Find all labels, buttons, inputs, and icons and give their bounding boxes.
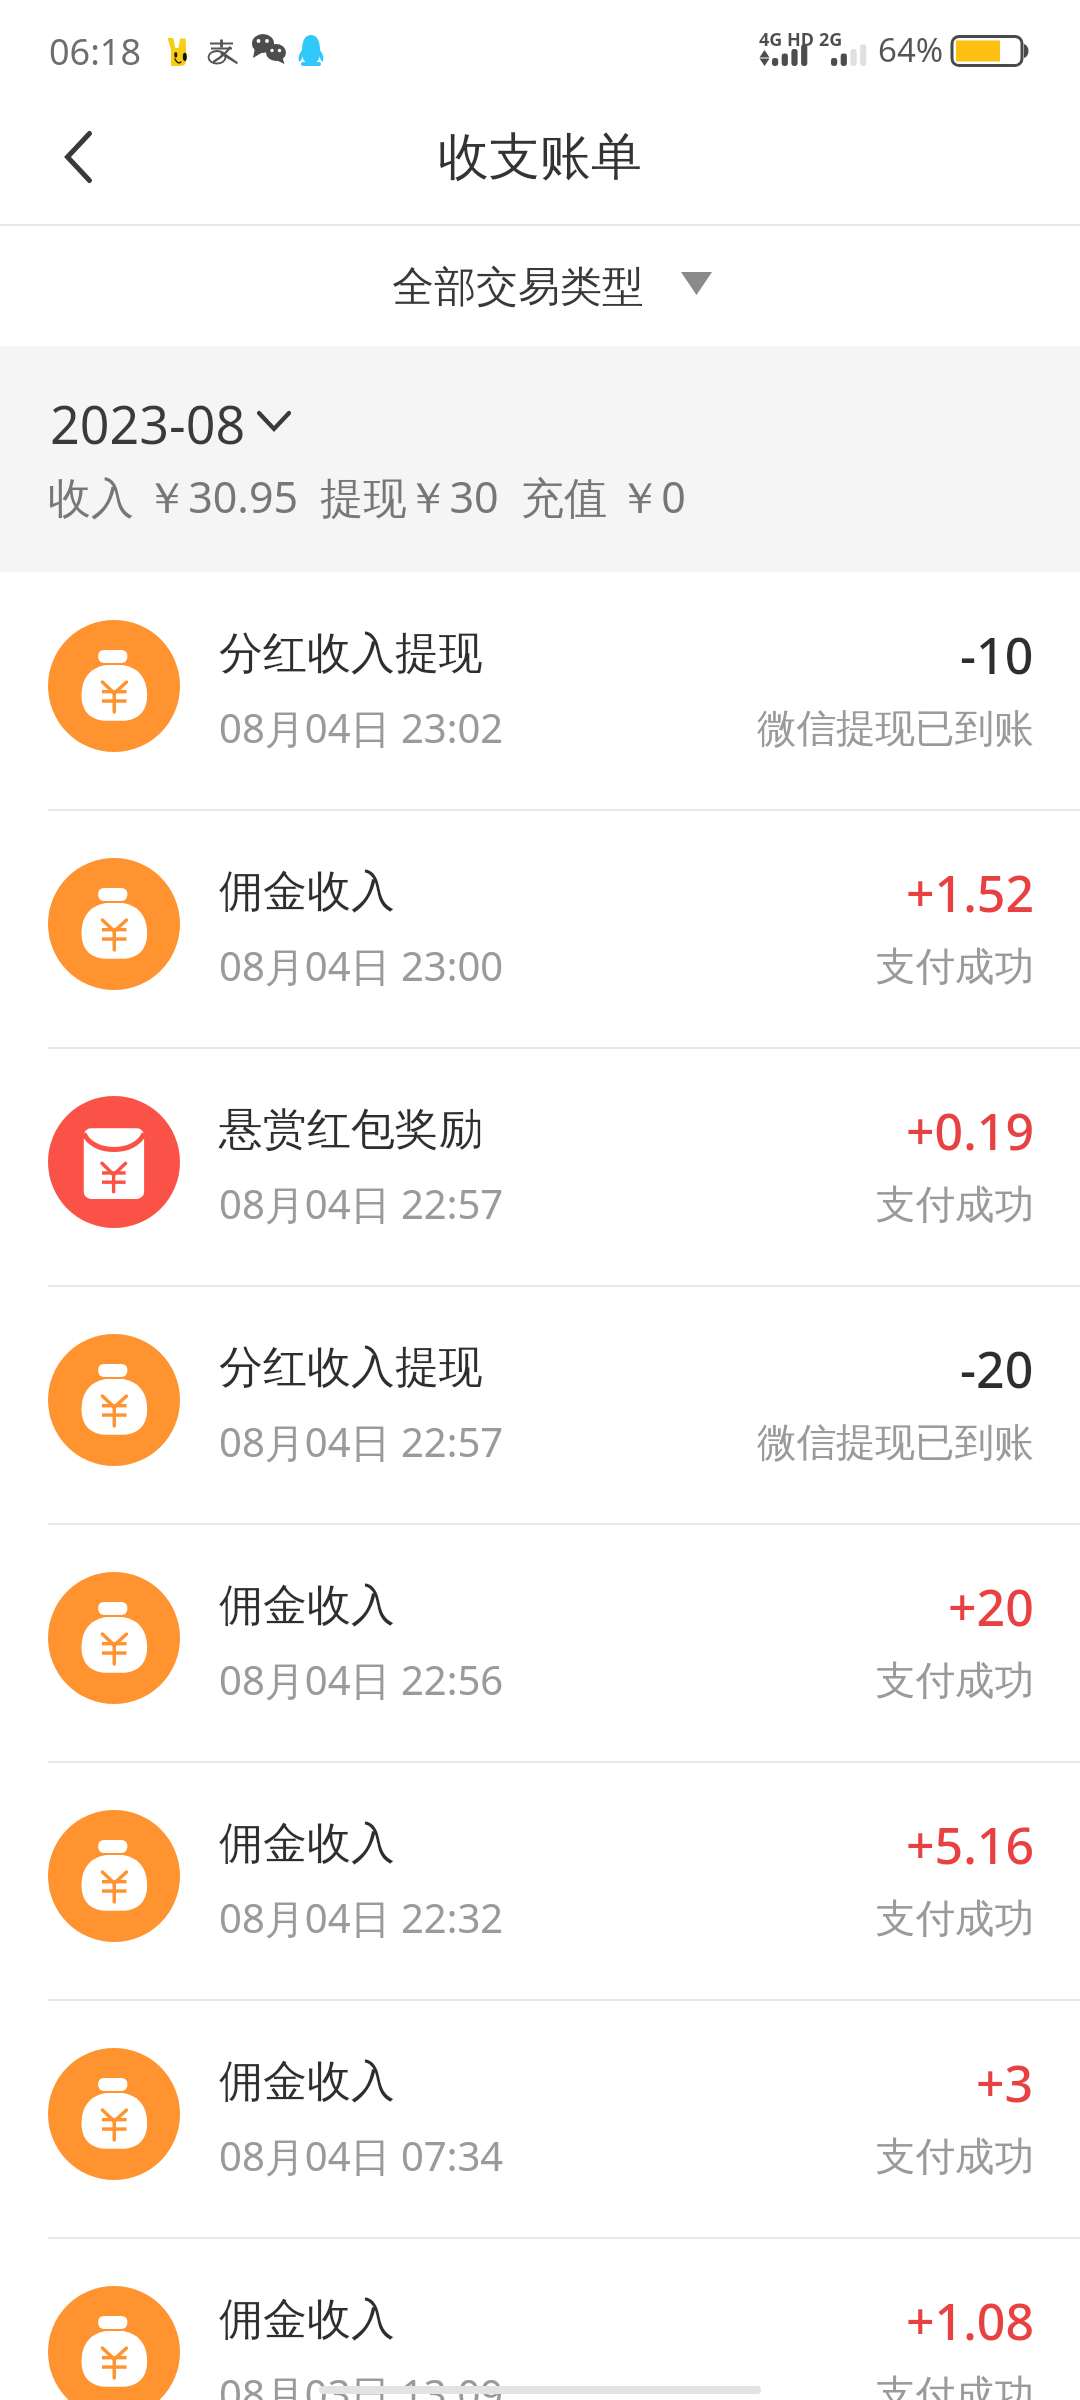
button[interactable]: 悬赏红包奖励 <box>0 1049 1080 1285</box>
staticText: 4G HD <box>759 27 814 52</box>
staticText: 支付成功 <box>876 2132 1034 2182</box>
staticText: 佣金收入 <box>219 1578 395 1633</box>
button[interactable]: 全部交易类型 <box>372 226 732 346</box>
staticText: 佣金收入 <box>219 2292 395 2347</box>
button[interactable]: 佣金收入 <box>0 1763 1080 1999</box>
staticText: +3 <box>976 2049 1034 2117</box>
staticText: 佣金收入 <box>219 2054 395 2109</box>
button[interactable]: 佣金收入 <box>0 1525 1080 1761</box>
staticText: 悬赏红包奖励 <box>219 1102 483 1157</box>
staticText: 08月04日 22:32 <box>219 1890 504 1945</box>
staticText: 分红收入提现 <box>219 1340 483 1395</box>
staticText: 08月03日 13:09 <box>219 2366 504 2400</box>
button[interactable]: 佣金收入 <box>0 2001 1080 2237</box>
button[interactable]: 佣金收入 <box>0 811 1080 1047</box>
staticText: 08月04日 23:02 <box>219 700 504 755</box>
staticText: 微信提现已到账 <box>757 1418 1034 1468</box>
staticText: 08月04日 22:57 <box>219 1414 504 1469</box>
staticText: +0.19 <box>906 1097 1034 1165</box>
staticText: 分红收入提现 <box>219 626 483 681</box>
button[interactable]: 分红收入提现 <box>0 573 1080 809</box>
staticText: 2G <box>819 27 843 52</box>
staticText: 佣金收入 <box>219 864 395 919</box>
staticText: +1.08 <box>906 2287 1034 2355</box>
staticText: -20 <box>960 1335 1034 1403</box>
button[interactable]: Back <box>18 98 144 224</box>
staticText: 支付成功 <box>876 2370 1034 2400</box>
staticText: -10 <box>960 621 1034 689</box>
staticText: 08月04日 23:00 <box>219 938 504 993</box>
staticText: 支付成功 <box>876 942 1034 992</box>
staticText: +5.16 <box>906 1811 1034 1879</box>
staticText: 佣金收入 <box>219 1816 395 1871</box>
staticText: 收入 ￥30.95 提现￥30 充值 ￥0 <box>48 467 686 526</box>
staticText: 微信提现已到账 <box>757 704 1034 754</box>
button[interactable]: 2023-08 <box>44 380 302 442</box>
staticText: 支付成功 <box>876 1894 1034 1944</box>
staticText: 收支账单 <box>438 125 642 189</box>
staticText: 08月04日 22:56 <box>219 1652 504 1707</box>
staticText: 08月04日 22:57 <box>219 1176 504 1231</box>
staticText: 支付成功 <box>876 1180 1034 1230</box>
staticText: 2023-08 <box>50 388 246 450</box>
staticText: +20 <box>948 1573 1034 1641</box>
staticText: +1.52 <box>906 859 1034 927</box>
staticText: 08月04日 07:34 <box>219 2128 504 2183</box>
button[interactable]: 分红收入提现 <box>0 1287 1080 1523</box>
staticText: 64% <box>878 27 944 72</box>
staticText: 06:18 <box>49 27 142 76</box>
staticText: 支付成功 <box>876 1656 1034 1706</box>
button[interactable]: 佣金收入 <box>0 2239 1080 2400</box>
staticText: 全部交易类型 <box>392 261 644 314</box>
